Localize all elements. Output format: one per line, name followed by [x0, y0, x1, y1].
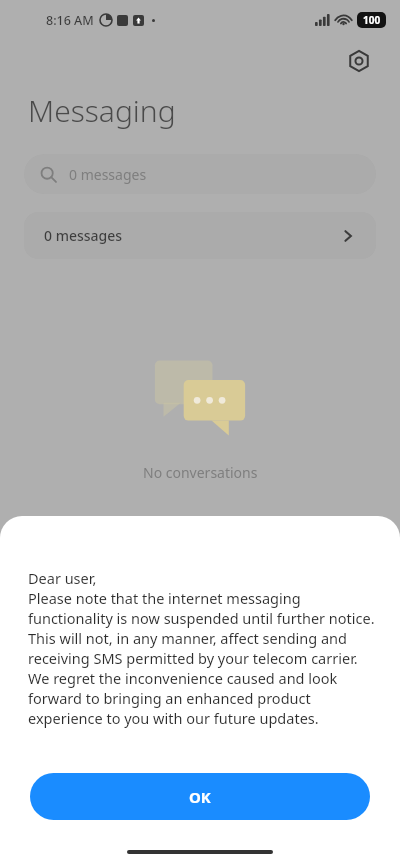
staticText: 8:16 AM [46, 12, 94, 29]
staticText: 0 messages [69, 165, 147, 184]
button[interactable]: 0 messages [24, 212, 376, 259]
staticText: OK [189, 787, 211, 807]
staticText: 0 messages [44, 226, 123, 245]
staticText: 100 [363, 13, 381, 27]
button[interactable]: Settings [344, 46, 374, 76]
button[interactable]: 0 messages [24, 154, 376, 194]
staticText: Messaging [28, 90, 176, 131]
staticText: No conversations [143, 463, 258, 482]
staticText: Dear user, Please note that the internet… [28, 568, 382, 728]
button[interactable]: OK [30, 773, 370, 820]
